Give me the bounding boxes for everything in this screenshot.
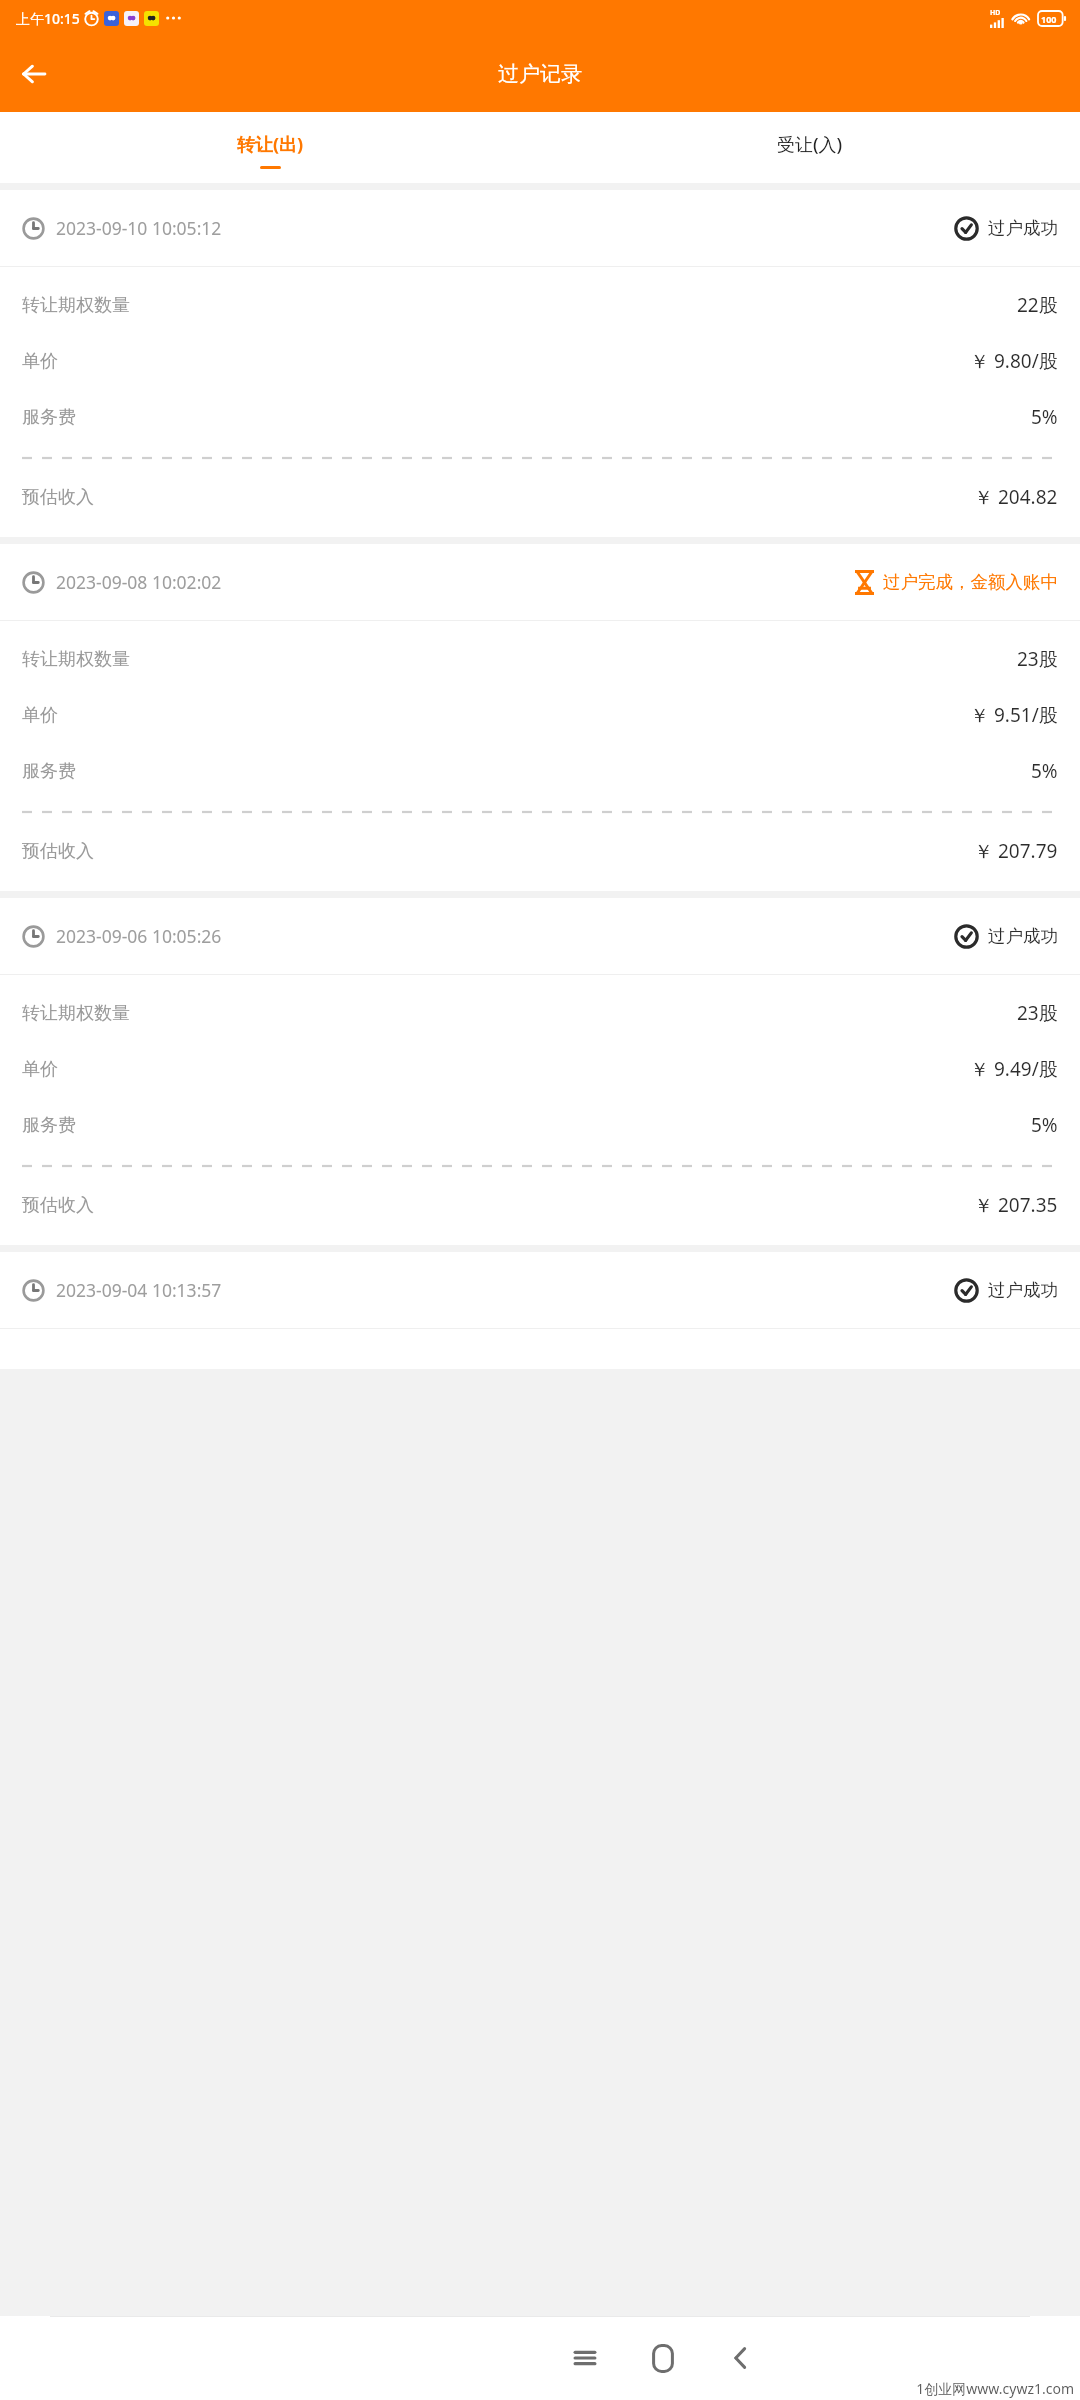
staticText: 过户完成，金额入账中	[883, 571, 1058, 593]
button[interactable]: 2023-09-10 10:05:12	[0, 190, 1080, 537]
staticText: ￥ 204.82	[974, 484, 1058, 510]
staticText: 受让(入)	[777, 132, 843, 157]
button[interactable]: 返回	[8, 48, 60, 100]
staticText: ￥ 9.49/股	[970, 1056, 1058, 1082]
staticText: 5%	[1031, 404, 1058, 430]
staticText: 过户成功	[988, 217, 1058, 239]
staticText: 1创业网www.cywz1.com	[916, 2379, 1074, 2398]
staticText: ￥ 207.35	[974, 1192, 1058, 1218]
staticText: 5%	[1031, 758, 1058, 784]
button[interactable]: 2023-09-08 10:02:02	[0, 544, 1080, 891]
staticText: 单价	[22, 704, 58, 727]
staticText: 单价	[22, 1058, 58, 1081]
staticText: 预估收入	[22, 1194, 94, 1217]
staticText: 5%	[1031, 1112, 1058, 1138]
staticText: ￥ 207.79	[974, 838, 1058, 864]
staticText: 22股	[1017, 292, 1058, 318]
button[interactable]: 转让(出)	[0, 112, 540, 183]
staticText: 服务费	[22, 406, 76, 429]
staticText: 过户成功	[988, 1279, 1058, 1301]
staticText: 过户成功	[988, 925, 1058, 947]
staticText: 服务费	[22, 760, 76, 783]
staticText: 预估收入	[22, 486, 94, 509]
staticText: ￥ 9.80/股	[970, 348, 1058, 374]
button[interactable]: 受让(入)	[540, 112, 1080, 183]
button[interactable]: Recent apps	[546, 2319, 624, 2397]
button[interactable]: Home	[624, 2319, 702, 2397]
staticText: 2023-09-10 10:05:12	[56, 216, 222, 240]
staticText: 100	[1041, 13, 1057, 25]
staticText: 过户记录	[498, 61, 582, 87]
staticText: 2023-09-08 10:02:02	[56, 570, 222, 594]
button[interactable]: 2023-09-04 10:13:57	[0, 1252, 1080, 1369]
staticText: 服务费	[22, 1114, 76, 1137]
staticText: 23股	[1017, 1000, 1058, 1026]
staticText: 预估收入	[22, 840, 94, 863]
staticText: 转让期权数量	[22, 648, 130, 671]
staticText: 上午10:15	[16, 9, 80, 28]
staticText: 2023-09-06 10:05:26	[56, 924, 222, 948]
button[interactable]: 2023-09-06 10:05:26	[0, 898, 1080, 1245]
staticText: 单价	[22, 350, 58, 373]
button[interactable]: Back	[702, 2319, 780, 2397]
staticText: HD	[990, 8, 1001, 18]
staticText: 23股	[1017, 646, 1058, 672]
staticText: 转让期权数量	[22, 1002, 130, 1025]
staticText: 2023-09-04 10:13:57	[56, 1278, 222, 1302]
staticText: ￥ 9.51/股	[970, 702, 1058, 728]
staticText: 转让期权数量	[22, 294, 130, 317]
staticText: 转让(出)	[237, 132, 304, 157]
